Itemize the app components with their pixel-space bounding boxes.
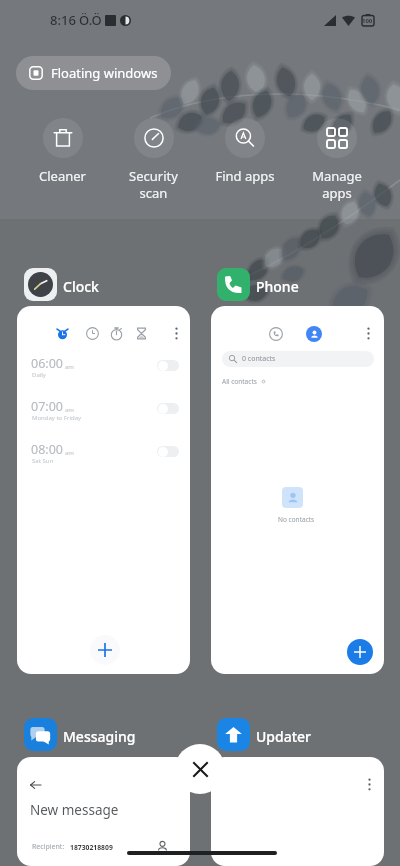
button[interactable]: Phone <box>217 268 299 301</box>
staticText: Cleaner <box>39 167 86 185</box>
staticText: 100 <box>362 17 373 25</box>
staticText: 06:00 <box>31 355 63 372</box>
staticText: Ö.Ö <box>79 11 102 29</box>
button[interactable]: Clock <box>24 268 99 301</box>
staticText: 0 contacts <box>242 354 276 364</box>
button[interactable]: 07:00 <box>17 398 190 432</box>
staticText: Manage apps <box>312 167 362 202</box>
staticText: Monday to Friday <box>32 414 82 422</box>
staticText: Sat Sun <box>32 457 54 465</box>
staticText: am <box>65 449 74 457</box>
button[interactable]: 06:00 <box>17 355 190 389</box>
button[interactable]: Back <box>25 775 45 795</box>
staticText: Messaging <box>63 727 136 746</box>
button[interactable]: Add contact <box>347 639 373 665</box>
button[interactable]: Pick contact <box>156 840 169 853</box>
staticText: 08:00 <box>31 441 63 458</box>
staticText: 8:16 <box>50 11 76 29</box>
staticText: Floating windows <box>51 64 158 82</box>
staticText: Security scan <box>129 167 178 202</box>
button[interactable]: Add alarm <box>90 635 120 665</box>
staticText: 07:00 <box>31 398 63 415</box>
button[interactable]: Cleaner <box>17 118 108 185</box>
button[interactable] <box>211 757 384 866</box>
button[interactable]: Clear all recent apps <box>175 744 225 794</box>
button[interactable]: Security scan <box>108 118 199 202</box>
button[interactable]: 06:00 <box>17 306 190 674</box>
button[interactable]: Find apps <box>199 118 291 185</box>
button[interactable]: 0 contacts <box>222 351 374 367</box>
button[interactable]: 0 contacts <box>211 306 384 674</box>
staticText: am <box>65 363 74 371</box>
staticText: am <box>65 406 74 414</box>
staticText: Recipient: <box>32 842 65 852</box>
staticText: Updater <box>256 727 312 746</box>
button[interactable]: 08:00 <box>17 441 190 475</box>
staticText: All contacts <box>222 377 257 386</box>
button[interactable]: Updater <box>217 718 312 751</box>
button[interactable]: Back <box>17 757 190 866</box>
button[interactable]: Messaging <box>24 718 136 751</box>
staticText: Clock <box>63 277 99 296</box>
staticText: New message <box>30 801 119 819</box>
staticText: Phone <box>256 277 299 296</box>
staticText: No contacts <box>278 515 315 524</box>
button[interactable]: Manage apps <box>291 118 383 202</box>
staticText: Daily <box>32 371 46 379</box>
button[interactable]: Floating windows <box>16 56 171 90</box>
staticText: 18730218809 <box>70 843 113 852</box>
staticText: Find apps <box>215 167 275 185</box>
